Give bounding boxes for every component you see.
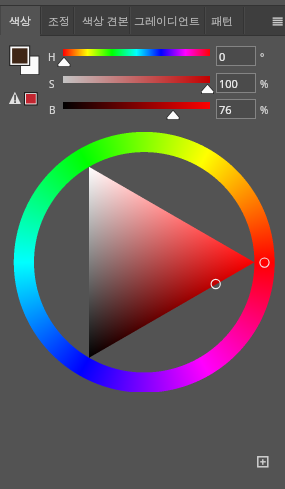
staticText: 색상 <box>9 14 31 28</box>
button[interactable]: 100 <box>216 73 256 93</box>
button[interactable]: 그레이디언트 <box>130 6 204 35</box>
staticText: 그레이디언트 <box>134 14 200 28</box>
staticText: S <box>49 77 55 91</box>
button[interactable]: 76 <box>216 99 256 119</box>
button[interactable]: Colour wheel <box>0 120 285 392</box>
staticText: 조정 <box>48 14 70 28</box>
staticText: % <box>260 77 269 91</box>
button[interactable]: 0 <box>216 46 256 66</box>
staticText: 패턴 <box>211 14 233 28</box>
button[interactable]: 색상 <box>0 6 40 35</box>
staticText: ° <box>260 50 265 64</box>
staticText: B <box>49 103 56 117</box>
staticText: 76 <box>219 102 232 117</box>
staticText: % <box>260 103 269 117</box>
button[interactable]: 색상 견본 <box>74 6 130 35</box>
button[interactable]: 패턴 <box>205 6 243 35</box>
button[interactable]: Panel menu <box>270 14 285 27</box>
staticText: 100 <box>219 76 238 91</box>
button[interactable]: H value slider <box>63 49 210 68</box>
button[interactable]: Add to swatches <box>257 456 269 468</box>
staticText: 색상 견본 <box>82 13 129 28</box>
staticText: H <box>48 50 56 64</box>
button[interactable]: B value slider <box>63 102 210 121</box>
staticText: 0 <box>219 49 226 64</box>
button[interactable]: S value slider <box>63 76 210 95</box>
button[interactable]: 조정 <box>41 6 73 35</box>
